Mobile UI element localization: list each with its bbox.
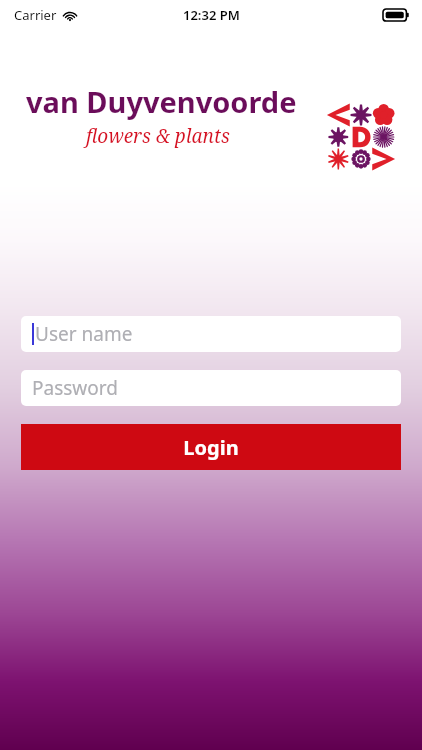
staticText: Password [32, 375, 118, 401]
other: van Duyvenvoorde logo mark [327, 104, 395, 170]
staticText: User name [35, 321, 133, 347]
button[interactable]: User name [21, 316, 401, 352]
button[interactable]: Login [21, 424, 401, 470]
button[interactable]: Password [21, 370, 401, 406]
staticText: flowers & plants [86, 123, 230, 149]
staticText: van Duyvenvoorde [26, 82, 297, 121]
staticText: Carrier [14, 6, 57, 24]
staticText: 12:32 PM [183, 6, 240, 24]
staticText: Login [183, 434, 239, 461]
